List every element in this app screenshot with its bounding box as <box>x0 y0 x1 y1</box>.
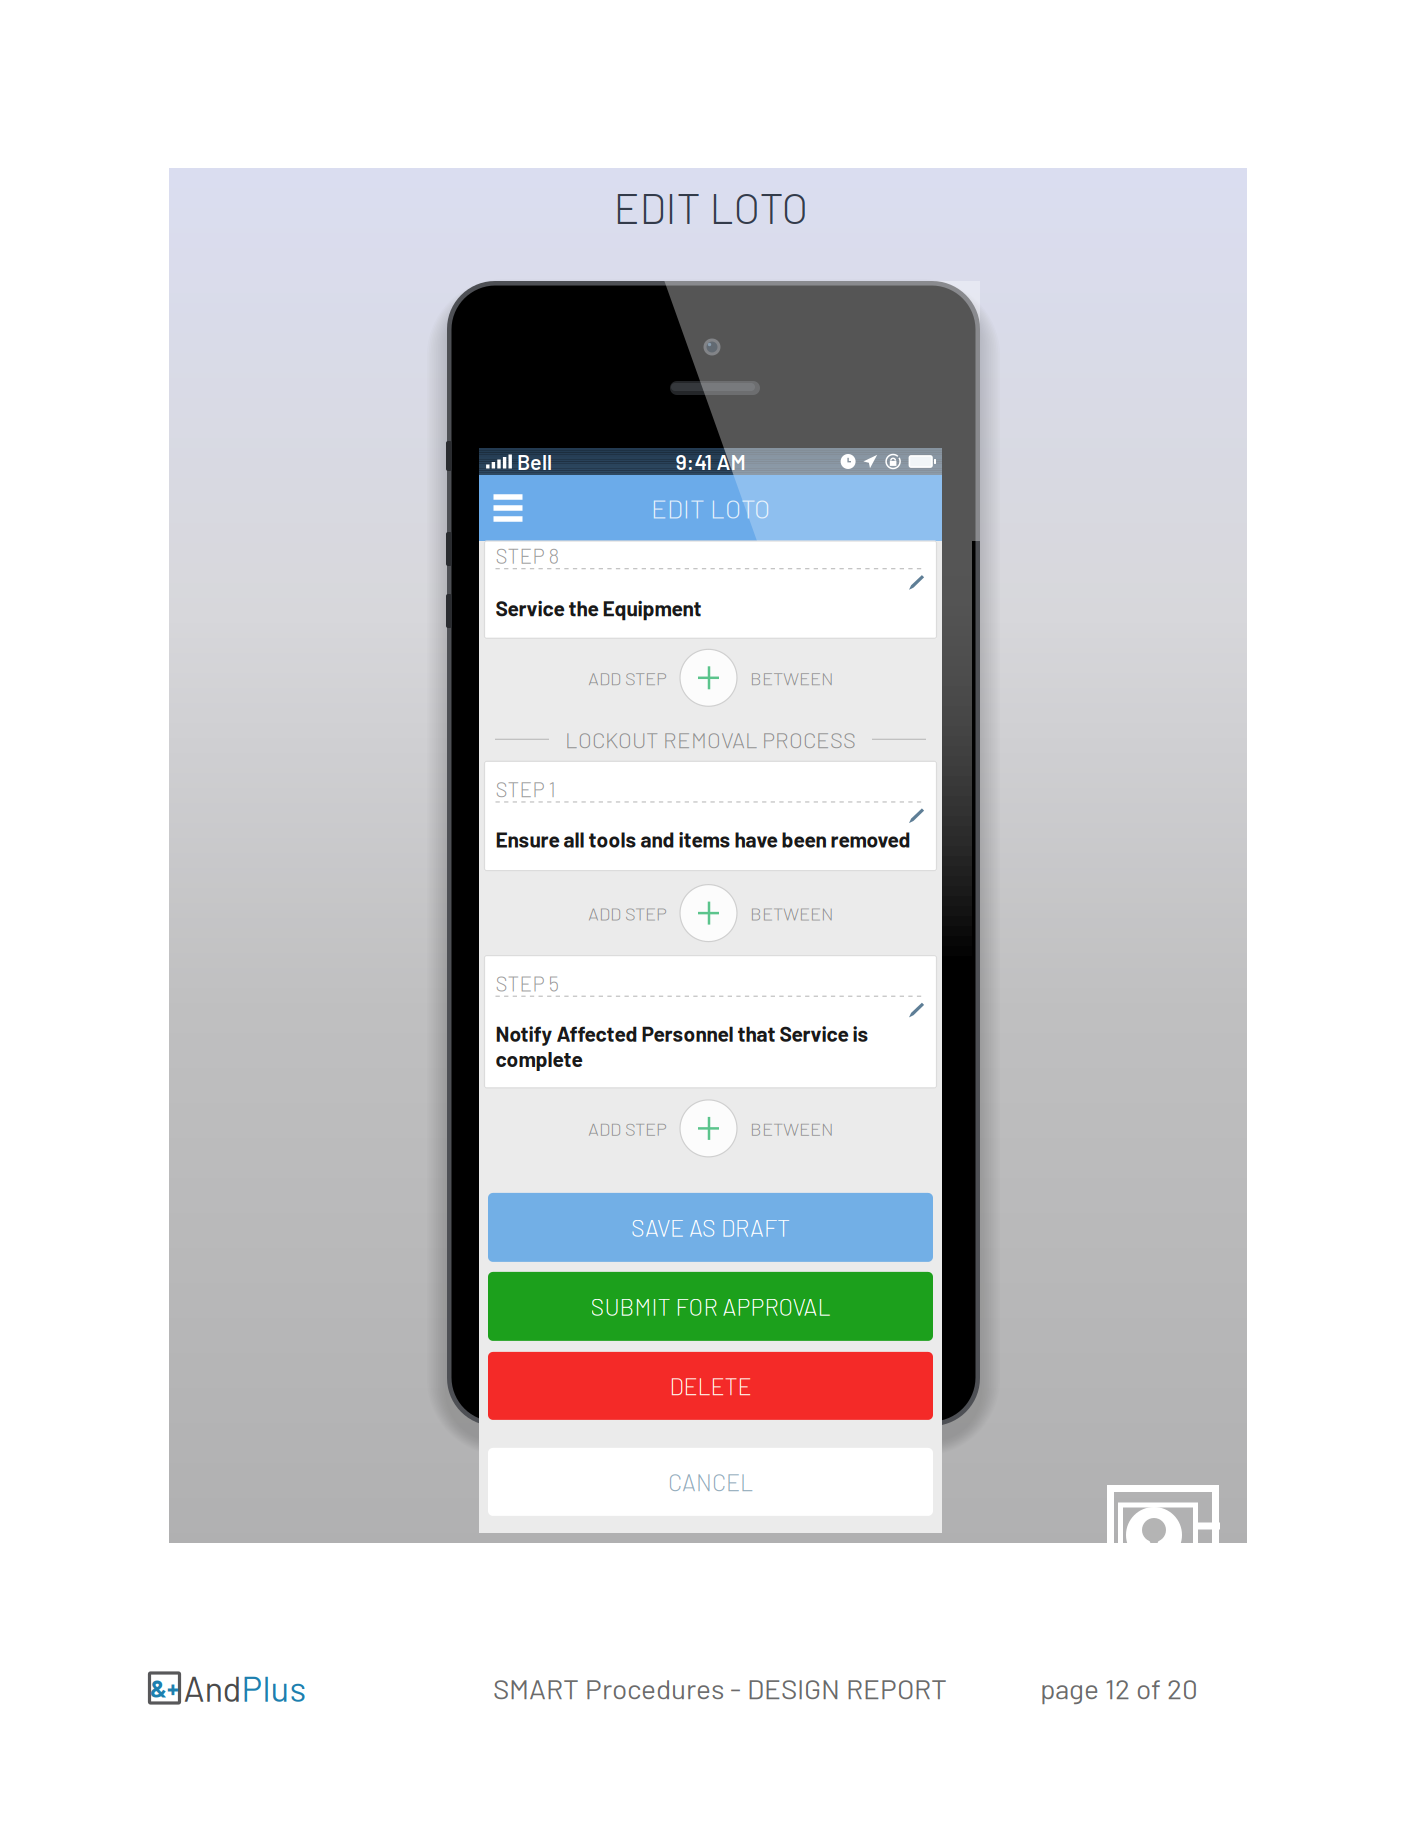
button[interactable]: ADD STEP <box>479 871 942 956</box>
button[interactable]: STEP 5 <box>484 956 936 1088</box>
staticText: SMART Procedures - DESIGN REPORT <box>493 1671 947 1705</box>
staticText: &+ <box>150 1674 179 1702</box>
staticText: BETWEEN <box>750 1117 833 1139</box>
staticText: ADD STEP <box>588 667 667 689</box>
button[interactable]: SAVE AS DRAFT <box>488 1193 933 1262</box>
button[interactable]: SUBMIT FOR APPROVAL <box>488 1272 933 1341</box>
staticText: ADD STEP <box>588 1117 667 1139</box>
button[interactable]: ADD STEP <box>479 638 942 717</box>
staticText: Service the Equipment <box>495 595 701 620</box>
staticText: STEP 1 <box>495 776 555 801</box>
staticText: SAVE AS DRAFT <box>631 1213 790 1241</box>
staticText: LOCKOUT REMOVAL PROCESS <box>565 726 856 753</box>
button[interactable]: STEP 1 <box>484 761 936 871</box>
button[interactable]: ADD STEP <box>479 1088 942 1193</box>
staticText: Ensure all tools and items have been rem… <box>495 827 910 852</box>
staticText: page 12 of 20 <box>1040 1671 1198 1705</box>
staticText: ADD STEP <box>588 902 667 924</box>
staticText: EDIT LOTO <box>651 492 770 524</box>
button[interactable]: Menu <box>479 475 537 541</box>
staticText: Bell <box>517 449 552 474</box>
staticText: Plus <box>241 1667 306 1709</box>
staticText: BETWEEN <box>750 902 833 924</box>
button[interactable]: CANCEL <box>488 1448 933 1516</box>
staticText: DELETE <box>669 1372 751 1400</box>
staticText: Notify Affected Personnel that Service i… <box>495 1021 868 1071</box>
staticText: STEP 8 <box>495 543 559 568</box>
button[interactable]: STEP 8 <box>484 541 936 638</box>
staticText: And <box>183 1667 241 1709</box>
staticText: CANCEL <box>668 1468 753 1496</box>
staticText: EDIT LOTO <box>613 181 808 233</box>
staticText: BETWEEN <box>750 667 833 689</box>
staticText: 9:41 AM <box>675 449 745 474</box>
staticText: SUBMIT FOR APPROVAL <box>590 1292 830 1320</box>
staticText: STEP 5 <box>495 971 558 996</box>
button[interactable]: DELETE <box>488 1352 933 1420</box>
